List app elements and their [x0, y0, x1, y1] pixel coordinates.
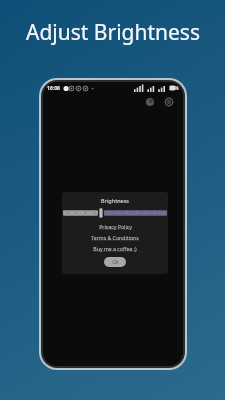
- button[interactable]: Buy me a coffee :): [62, 245, 168, 252]
- button[interactable]: Terms & Conditions: [62, 234, 168, 241]
- staticText: 24%: [169, 85, 179, 91]
- button[interactable]: Theme: [144, 96, 156, 108]
- staticText: Ok: [112, 259, 119, 266]
- staticText: Adjust Brightness: [26, 18, 200, 47]
- staticText: Buy me a coffee :): [93, 245, 137, 252]
- button[interactable]: [62, 208, 168, 218]
- staticText: Privacy Policy: [99, 223, 132, 230]
- button[interactable]: Ok: [104, 257, 126, 267]
- staticText: Terms & Conditions: [91, 234, 139, 241]
- button[interactable]: Privacy Policy: [62, 223, 168, 230]
- staticText: Brightness: [101, 197, 129, 204]
- staticText: 16:08: [47, 85, 60, 92]
- button[interactable]: Settings: [163, 96, 175, 108]
